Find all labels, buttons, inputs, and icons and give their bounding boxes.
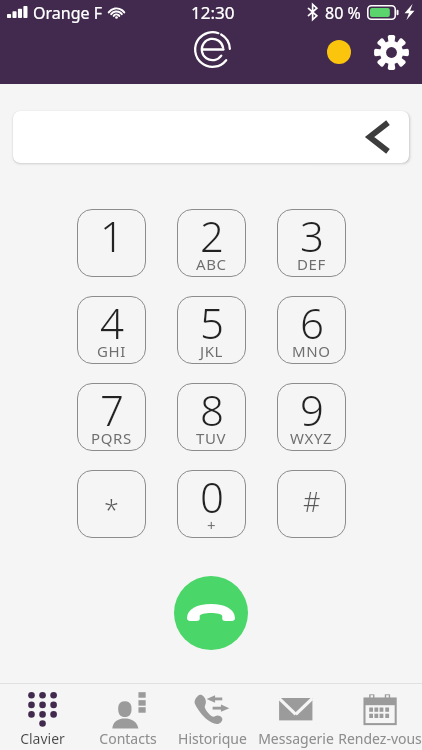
button[interactable]: 4 xyxy=(77,296,146,364)
button[interactable]: 2 xyxy=(177,209,246,277)
button[interactable]: 9 xyxy=(277,383,346,451)
staticText: + xyxy=(207,515,217,535)
staticText: 0 xyxy=(200,468,224,525)
button[interactable]: 1 xyxy=(77,209,146,277)
staticText: Historique xyxy=(178,729,247,748)
staticText: 4 xyxy=(100,294,124,351)
button[interactable]: 8 xyxy=(177,383,246,451)
staticText: Messagerie xyxy=(258,729,334,748)
staticText: JKL xyxy=(200,341,224,361)
staticText: * xyxy=(104,491,119,528)
button[interactable]: 5 xyxy=(177,296,246,364)
staticText: 3 xyxy=(300,207,324,264)
staticText: GHI xyxy=(97,341,126,361)
staticText: DEF xyxy=(297,254,326,274)
staticText: Orange F xyxy=(33,2,102,24)
staticText: # xyxy=(303,483,321,520)
staticText: 2 xyxy=(200,207,224,264)
button[interactable]: Historique xyxy=(170,684,254,750)
button[interactable]: 0 xyxy=(177,470,246,538)
button[interactable]: Clavier xyxy=(0,684,85,750)
staticText: MNO xyxy=(292,341,331,361)
staticText: ABC xyxy=(196,254,227,274)
button[interactable]: Presence status xyxy=(320,33,358,71)
staticText: Clavier xyxy=(20,729,65,748)
staticText: 80 % xyxy=(325,2,361,24)
staticText: PQRS xyxy=(91,428,132,448)
button[interactable]: Contacts xyxy=(85,684,170,750)
staticText: WXYZ xyxy=(290,428,333,448)
button[interactable]: Rendez-vous xyxy=(338,684,422,750)
staticText: TUV xyxy=(196,428,227,448)
staticText: 6 xyxy=(300,294,324,351)
staticText: 7 xyxy=(100,381,124,438)
button[interactable]: 3 xyxy=(277,209,346,277)
button[interactable]: 6 xyxy=(277,296,346,364)
staticText: 5 xyxy=(200,294,224,351)
button[interactable]: Call xyxy=(174,576,248,650)
staticText: 1 xyxy=(100,207,124,264)
staticText: Rendez-vous xyxy=(338,729,422,748)
staticText: Contacts xyxy=(99,729,157,748)
button[interactable]: * xyxy=(77,470,146,538)
button[interactable]: 7 xyxy=(77,383,146,451)
button[interactable]: Backspace xyxy=(349,111,405,163)
button[interactable]: Settings xyxy=(369,30,413,74)
button[interactable]: Messagerie xyxy=(254,684,338,750)
button[interactable]: # xyxy=(277,470,346,538)
staticText: 9 xyxy=(300,381,324,438)
staticText: 8 xyxy=(200,381,224,438)
staticText: 12:30 xyxy=(191,1,235,24)
